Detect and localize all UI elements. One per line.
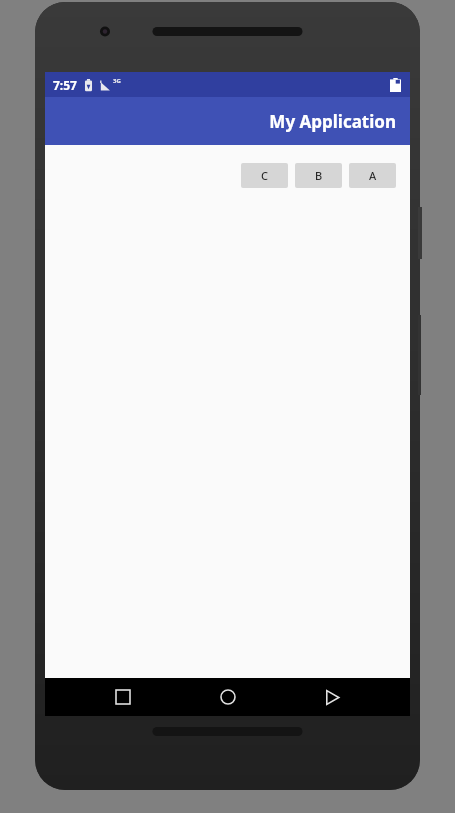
button[interactable]: C (241, 163, 288, 188)
button[interactable]: Back (305, 678, 359, 716)
staticText: My Application (269, 110, 396, 133)
staticText: 3G (113, 77, 121, 85)
button[interactable]: Recent apps (96, 678, 150, 716)
staticText: B (315, 168, 323, 183)
button[interactable]: A (349, 163, 396, 188)
staticText: A (369, 168, 377, 183)
button[interactable]: B (295, 163, 342, 188)
staticText: C (261, 168, 268, 183)
staticText: 7:57 (53, 77, 77, 93)
button[interactable]: Home (201, 678, 255, 716)
